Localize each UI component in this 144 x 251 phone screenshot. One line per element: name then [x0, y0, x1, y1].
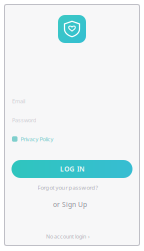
staticText: Privacy Policy	[20, 135, 53, 143]
staticText: Email	[12, 97, 25, 105]
button[interactable]: Forgot your password?	[37, 183, 97, 192]
button[interactable]: No account login ›	[46, 232, 90, 241]
staticText: LOG IN	[60, 164, 84, 174]
button[interactable]: LOG IN	[11, 160, 132, 178]
staticText: No account login ›	[46, 233, 90, 240]
button[interactable]: or Sign Up	[53, 199, 87, 209]
staticText: Password	[12, 116, 36, 124]
staticText: Forgot your password?	[37, 184, 97, 191]
button[interactable]: Privacy Policy	[12, 134, 132, 143]
staticText: or Sign Up	[53, 200, 87, 209]
